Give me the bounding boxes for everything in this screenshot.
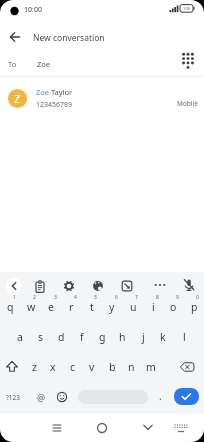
staticText: 2 <box>33 294 36 301</box>
button[interactable] <box>47 418 67 438</box>
staticText: 5 <box>94 294 97 301</box>
button[interactable] <box>150 275 170 295</box>
button[interactable] <box>92 418 112 438</box>
staticText: @ <box>37 391 46 403</box>
button[interactable]: d <box>51 327 71 347</box>
staticText: 100 <box>183 6 191 12</box>
staticText: q <box>7 300 14 314</box>
button[interactable]: q <box>0 297 20 317</box>
staticText: 1 <box>13 294 16 301</box>
staticText: l <box>183 330 186 344</box>
staticText: z <box>32 360 37 374</box>
button[interactable] <box>174 388 199 405</box>
button[interactable] <box>171 420 191 436</box>
button[interactable]: c <box>63 357 83 377</box>
button[interactable]: r <box>61 297 81 317</box>
button[interactable]: n <box>121 357 141 377</box>
staticText: g <box>99 330 106 344</box>
button[interactable] <box>59 276 79 296</box>
button[interactable] <box>1 356 23 378</box>
staticText: Mobile <box>177 99 198 108</box>
button[interactable] <box>6 28 24 46</box>
staticText: e <box>48 300 54 314</box>
staticText: a <box>17 330 23 344</box>
staticText: 3 <box>54 294 57 301</box>
button[interactable]: k <box>153 327 173 347</box>
button[interactable]: e <box>41 297 61 317</box>
staticText: m <box>146 360 156 374</box>
button[interactable]: Z <box>0 81 204 117</box>
staticText: f <box>80 330 84 344</box>
staticText: y <box>109 300 115 314</box>
staticText: 6 <box>115 294 118 301</box>
staticText: Zoe <box>37 59 51 69</box>
button[interactable]: @ <box>31 387 51 407</box>
staticText: k <box>160 330 166 344</box>
button[interactable]: a <box>10 327 30 347</box>
staticText: To <box>8 59 17 69</box>
button[interactable] <box>178 50 198 72</box>
button[interactable]: . <box>150 386 170 406</box>
staticText: i <box>152 300 155 314</box>
button[interactable] <box>138 417 158 437</box>
staticText: h <box>119 330 126 344</box>
button[interactable] <box>117 276 137 296</box>
button[interactable] <box>78 390 148 404</box>
staticText: 7 <box>135 294 138 301</box>
staticText: o <box>170 300 177 314</box>
staticText: w <box>27 300 36 314</box>
button[interactable]: j <box>133 327 153 347</box>
button[interactable] <box>30 277 50 297</box>
button[interactable]: l <box>174 327 194 347</box>
button[interactable]: m <box>141 357 161 377</box>
button[interactable]: ?123 <box>0 387 26 407</box>
button[interactable]: y <box>102 297 122 317</box>
staticText: 4 <box>74 294 77 301</box>
staticText: c <box>70 360 76 374</box>
staticText: Zoe Taylor <box>36 87 73 97</box>
button[interactable] <box>179 275 199 295</box>
button[interactable]: u <box>123 297 143 317</box>
staticText: d <box>58 330 65 344</box>
staticText: b <box>109 360 116 374</box>
button[interactable] <box>88 276 108 296</box>
staticText: . <box>159 389 162 403</box>
staticText: 0 <box>196 294 199 301</box>
staticText: n <box>128 360 135 374</box>
staticText: j <box>142 330 145 344</box>
staticText: Z <box>14 91 21 106</box>
button[interactable] <box>175 356 199 378</box>
button[interactable]: s <box>31 327 51 347</box>
button[interactable]: h <box>112 327 132 347</box>
button[interactable] <box>4 276 24 296</box>
button[interactable] <box>52 387 72 407</box>
button[interactable]: o <box>163 297 183 317</box>
staticText: 8 <box>156 294 159 301</box>
staticText: p <box>191 300 198 314</box>
staticText: 9 <box>176 294 179 301</box>
staticText: v <box>89 360 95 374</box>
staticText: x <box>50 360 56 374</box>
staticText: s <box>38 330 44 344</box>
staticText: t <box>90 300 94 314</box>
button[interactable]: f <box>72 327 92 347</box>
button[interactable]: w <box>21 297 41 317</box>
staticText: u <box>130 300 137 314</box>
button[interactable]: i <box>143 297 163 317</box>
staticText: 123456789 <box>36 100 73 110</box>
button[interactable]: x <box>43 357 63 377</box>
staticText: 10:00 <box>24 5 42 15</box>
button[interactable]: t <box>82 297 102 317</box>
button[interactable]: b <box>102 357 122 377</box>
staticText: New conversation <box>33 32 105 44</box>
button[interactable]: z <box>24 357 44 377</box>
button[interactable]: v <box>82 357 102 377</box>
button[interactable]: g <box>92 327 112 347</box>
staticText: r <box>69 300 74 314</box>
button[interactable]: p <box>184 297 204 317</box>
staticText: ?123 <box>6 393 20 402</box>
